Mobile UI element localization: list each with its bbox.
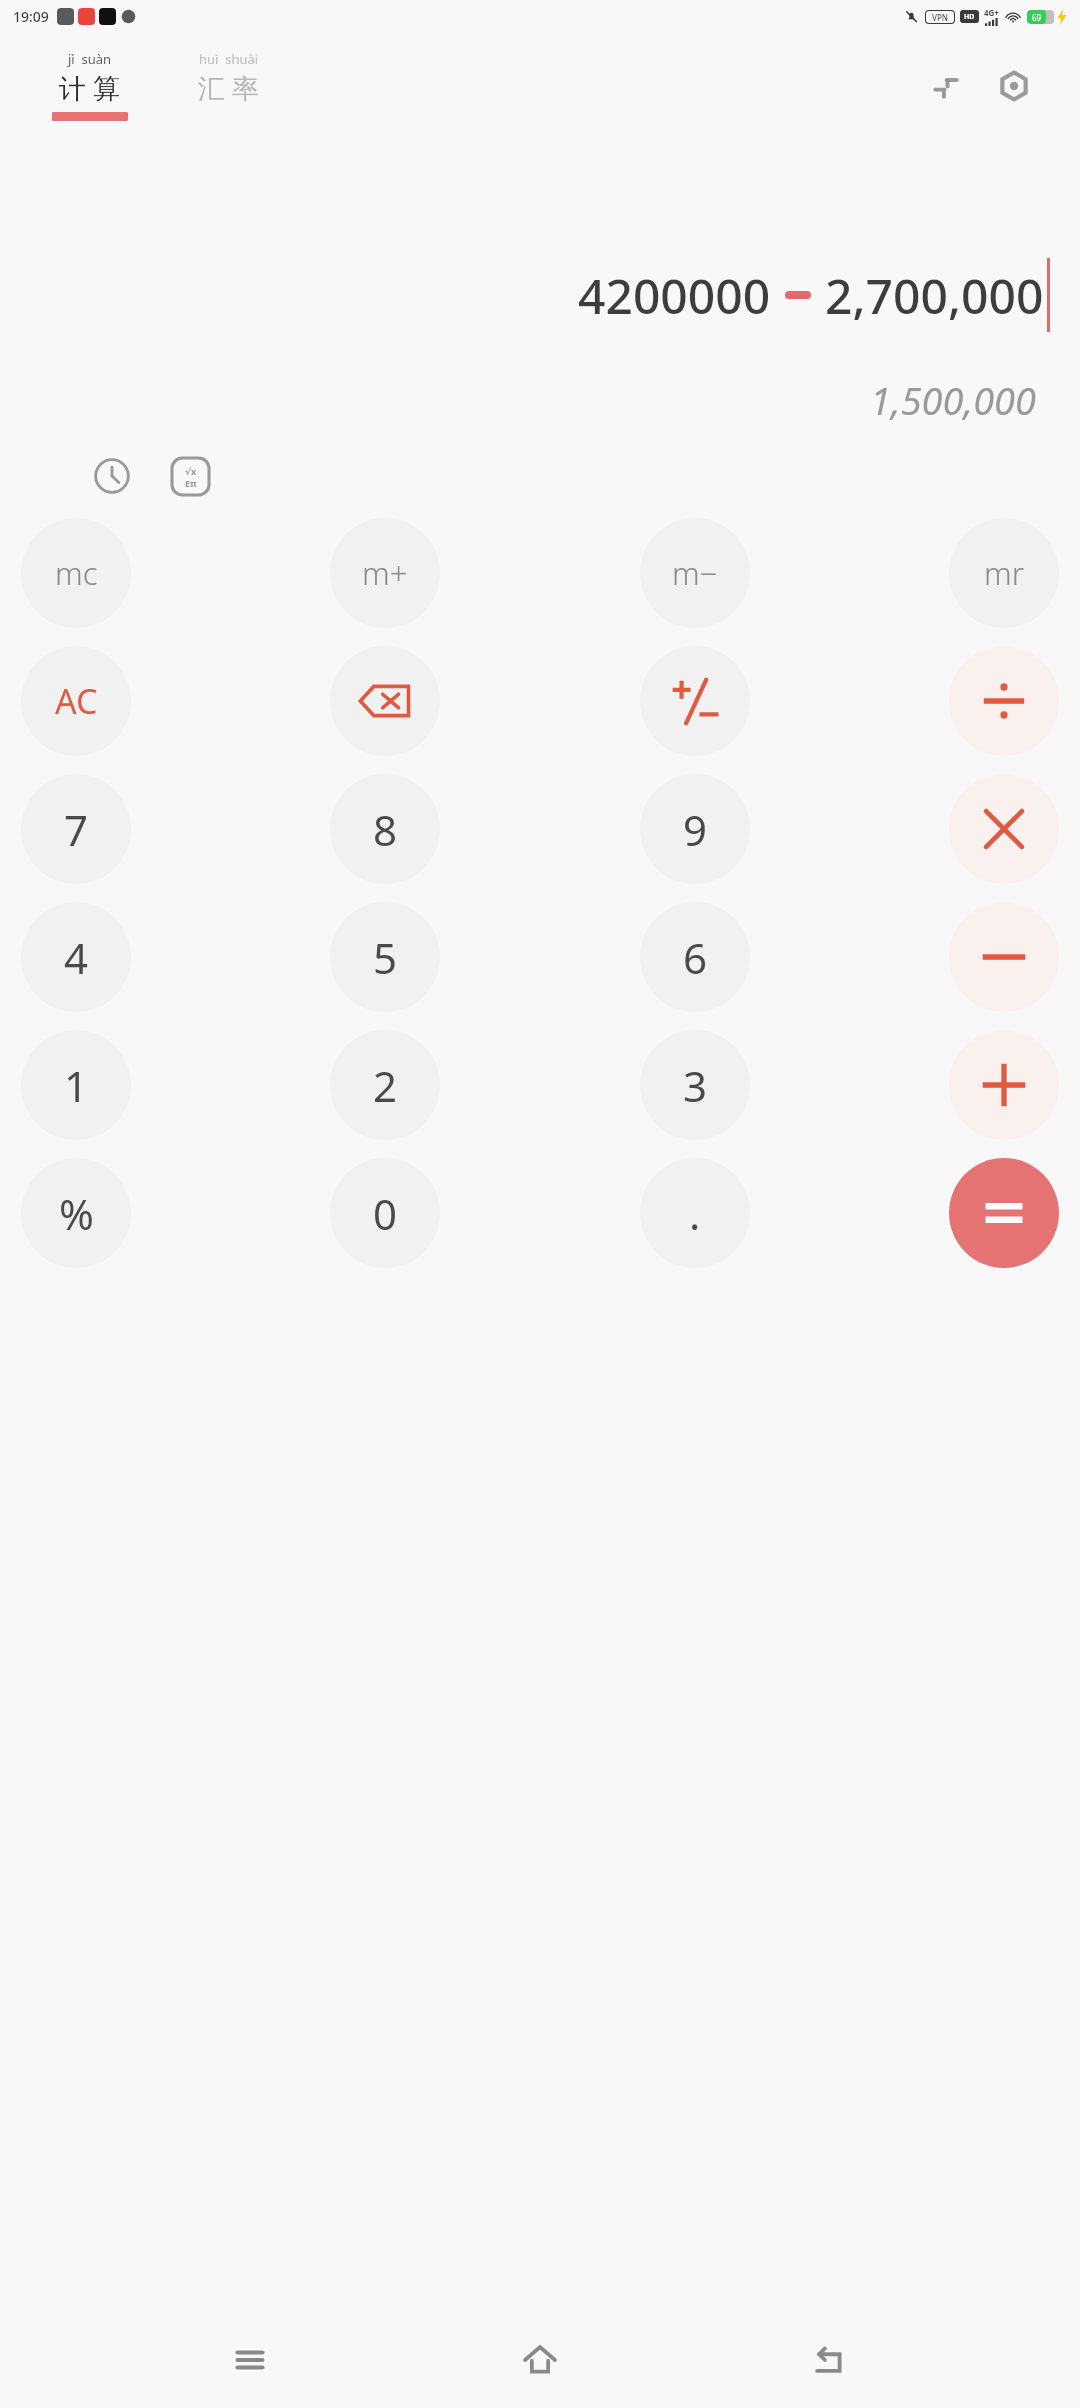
- button[interactable]: mc: [21, 518, 131, 628]
- button[interactable]: Resize: [920, 60, 972, 112]
- button[interactable]: AC: [21, 646, 131, 756]
- button[interactable]: History: [84, 448, 140, 504]
- button[interactable]: 9: [640, 774, 750, 884]
- staticText: 4G+: [984, 7, 999, 18]
- button[interactable]: 0: [330, 1158, 440, 1268]
- button[interactable]: Plus: [949, 1030, 1059, 1140]
- button[interactable]: 5: [330, 902, 440, 1012]
- staticText: 3: [683, 1057, 708, 1114]
- staticText: AC: [55, 678, 98, 724]
- staticText: 4: [64, 929, 89, 986]
- button[interactable]: 8: [330, 774, 440, 884]
- button[interactable]: huì shuài: [194, 50, 264, 121]
- staticText: 2,700,000: [825, 263, 1044, 328]
- staticText: 1: [64, 1057, 89, 1114]
- button[interactable]: Back: [790, 2320, 870, 2400]
- staticText: 19:09: [13, 7, 49, 26]
- button[interactable]: mr: [949, 518, 1059, 628]
- button[interactable]: 7: [21, 774, 131, 884]
- button[interactable]: 2: [330, 1030, 440, 1140]
- button[interactable]: 4: [21, 902, 131, 1012]
- button[interactable]: Recents: [210, 2320, 290, 2400]
- staticText: √x: [185, 465, 197, 477]
- button[interactable]: m−: [640, 518, 750, 628]
- button[interactable]: jì suàn: [48, 50, 132, 121]
- button[interactable]: Equals: [949, 1158, 1059, 1268]
- staticText: 汇 率: [198, 69, 260, 106]
- staticText: VPN: [932, 12, 949, 23]
- button[interactable]: Home: [500, 2320, 580, 2400]
- button[interactable]: Scientific functions: [162, 448, 218, 504]
- staticText: 2: [373, 1057, 398, 1114]
- button[interactable]: Settings: [988, 60, 1040, 112]
- button[interactable]: Multiply: [949, 774, 1059, 884]
- staticText: HD: [964, 12, 975, 22]
- staticText: mr: [984, 552, 1024, 594]
- staticText: 计 算: [59, 69, 121, 106]
- button[interactable]: %: [21, 1158, 131, 1268]
- staticText: 5: [373, 929, 398, 986]
- staticText: %: [59, 1185, 94, 1242]
- staticText: m+: [362, 552, 408, 594]
- button[interactable]: Divide: [949, 646, 1059, 756]
- staticText: 8: [373, 801, 398, 858]
- staticText: jì suàn: [68, 50, 112, 68]
- staticText: 4200000: [578, 263, 771, 328]
- staticText: 69: [1032, 12, 1042, 23]
- button[interactable]: .: [640, 1158, 750, 1268]
- button[interactable]: m+: [330, 518, 440, 628]
- button[interactable]: 3: [640, 1030, 750, 1140]
- staticText: 0: [373, 1185, 398, 1242]
- button[interactable]: Plus minus: [640, 646, 750, 756]
- staticText: Eπ: [185, 477, 197, 489]
- staticText: m−: [672, 552, 718, 594]
- staticText: huì shuài: [199, 50, 259, 68]
- button[interactable]: 1: [21, 1030, 131, 1140]
- staticText: mc: [55, 552, 98, 594]
- staticText: 6: [683, 929, 708, 986]
- staticText: 7: [64, 801, 89, 858]
- staticText: 9: [683, 801, 708, 858]
- staticText: .: [689, 1185, 701, 1242]
- button[interactable]: Minus: [949, 902, 1059, 1012]
- staticText: 1,500,000: [40, 374, 1036, 426]
- button[interactable]: 6: [640, 902, 750, 1012]
- button[interactable]: Backspace: [330, 646, 440, 756]
